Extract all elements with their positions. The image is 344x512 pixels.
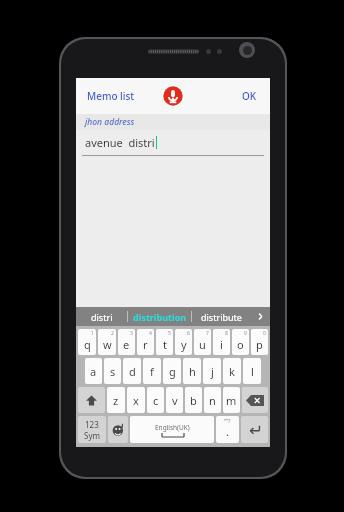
- staticText: 8: [225, 330, 228, 337]
- staticText: w: [103, 337, 112, 352]
- staticText: 3: [130, 330, 133, 337]
- staticText: t: [163, 337, 167, 352]
- button[interactable]: 1: [78, 329, 96, 355]
- staticText: i: [220, 337, 223, 352]
- button[interactable]: “”?: [216, 416, 239, 443]
- staticText: Memo list: [87, 89, 135, 103]
- staticText: distri: [91, 311, 113, 323]
- button[interactable]: 8: [213, 329, 230, 355]
- button[interactable]: 3: [118, 329, 135, 355]
- staticText: 6: [187, 330, 190, 337]
- staticText: z: [113, 393, 119, 408]
- button[interactable]: 9: [232, 329, 249, 355]
- button[interactable]: n: [204, 387, 221, 413]
- button[interactable]: jhon address: [76, 114, 270, 130]
- button[interactable]: f: [143, 358, 161, 384]
- button[interactable]: distribute: [192, 307, 250, 326]
- staticText: v: [172, 393, 178, 408]
- button[interactable]: 0: [251, 329, 268, 355]
- button[interactable]: a: [85, 358, 102, 384]
- button[interactable]: OK: [237, 82, 262, 110]
- button[interactable]: v: [166, 387, 183, 413]
- staticText: 1: [91, 330, 94, 337]
- staticText: h: [189, 364, 196, 379]
- staticText: English(UK): [155, 423, 190, 432]
- staticText: u: [199, 337, 206, 352]
- staticText: n: [209, 393, 216, 408]
- button[interactable]: z: [107, 387, 125, 413]
- staticText: o: [237, 337, 244, 352]
- staticText: 4: [149, 330, 152, 337]
- staticText: p: [256, 337, 263, 352]
- other: Delete: [246, 395, 264, 406]
- staticText: q: [84, 337, 91, 352]
- button[interactable]: Voice input: [162, 85, 184, 107]
- other: Shift: [85, 394, 98, 407]
- button[interactable]: Enter: [241, 416, 268, 443]
- staticText: k: [229, 364, 235, 379]
- button[interactable]: 4: [137, 329, 154, 355]
- button[interactable]: avenue distri: [76, 130, 270, 162]
- button[interactable]: Memo list: [82, 82, 140, 110]
- staticText: .: [226, 424, 229, 439]
- staticText: g: [169, 364, 176, 379]
- button[interactable]: g: [163, 358, 181, 384]
- staticText: 9: [244, 330, 247, 337]
- button[interactable]: x: [127, 387, 145, 413]
- staticText: distribution: [133, 311, 187, 323]
- button[interactable]: m: [223, 387, 240, 413]
- staticText: b: [190, 393, 197, 408]
- staticText: y: [181, 337, 187, 352]
- button[interactable]: s: [104, 358, 121, 384]
- staticText: avenue distri: [85, 135, 155, 150]
- staticText: l: [251, 364, 254, 379]
- staticText: 5: [168, 330, 171, 337]
- button[interactable]: distribution: [128, 307, 191, 326]
- button[interactable]: d: [123, 358, 141, 384]
- button[interactable]: j: [203, 358, 221, 384]
- button[interactable]: l: [243, 358, 261, 384]
- staticText: 7: [206, 330, 209, 337]
- button[interactable]: Delete: [242, 387, 268, 413]
- button[interactable]: h: [183, 358, 201, 384]
- staticText: OK: [242, 89, 257, 103]
- staticText: e: [123, 337, 130, 352]
- button[interactable]: 123: [78, 416, 106, 443]
- staticText: 0: [263, 330, 266, 337]
- button[interactable]: k: [223, 358, 241, 384]
- button[interactable]: distri: [76, 307, 127, 326]
- staticText: 123: [85, 419, 99, 430]
- button[interactable]: b: [185, 387, 202, 413]
- staticText: d: [129, 364, 136, 379]
- staticText: r: [143, 337, 148, 352]
- staticText: s: [110, 364, 116, 379]
- staticText: 2: [111, 330, 114, 337]
- button[interactable]: 6: [175, 329, 192, 355]
- staticText: m: [226, 393, 237, 408]
- button[interactable]: Shift: [78, 387, 105, 413]
- button[interactable]: English(UK): [130, 416, 214, 443]
- button[interactable]: 5: [156, 329, 173, 355]
- button[interactable]: c: [147, 387, 164, 413]
- button[interactable]: Emoji and settings: [108, 416, 128, 443]
- staticText: “”?: [224, 417, 231, 424]
- button[interactable]: 7: [194, 329, 211, 355]
- staticText: f: [150, 364, 154, 379]
- staticText: j: [211, 364, 214, 379]
- staticText: Sym: [84, 430, 100, 441]
- staticText: x: [133, 393, 139, 408]
- button[interactable]: 2: [98, 329, 116, 355]
- staticText: jhon address: [85, 116, 135, 128]
- staticText: c: [153, 393, 159, 408]
- button[interactable]: More suggestions: [250, 307, 270, 326]
- staticText: a: [90, 364, 97, 379]
- staticText: distribute: [201, 311, 242, 323]
